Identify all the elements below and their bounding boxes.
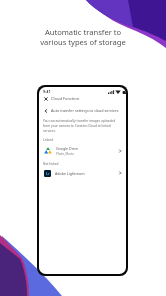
staticText: You can automatically transfer images up… xyxy=(43,119,122,133)
staticText: Automatic transfer to various types of s… xyxy=(6,27,160,47)
button[interactable]: Google Drive xyxy=(44,145,122,156)
staticText: Linked xyxy=(43,138,53,142)
other: Close xyxy=(44,97,48,101)
staticText: 9:41 xyxy=(43,89,51,94)
staticText: Not linked xyxy=(43,162,59,166)
staticText: Photo, Movie xyxy=(56,152,74,156)
button[interactable]: Back xyxy=(44,107,126,114)
button[interactable]: Close xyxy=(44,95,126,102)
staticText: Auto transfer settings to cloud services xyxy=(51,108,119,113)
button[interactable]: Lr xyxy=(44,168,122,178)
other: Back xyxy=(44,109,48,113)
staticText: Adobe Lightroom xyxy=(55,171,85,176)
staticText: Google Drive xyxy=(56,146,78,151)
staticText: Cloud Function xyxy=(51,96,80,101)
staticText: Lr xyxy=(46,171,50,176)
